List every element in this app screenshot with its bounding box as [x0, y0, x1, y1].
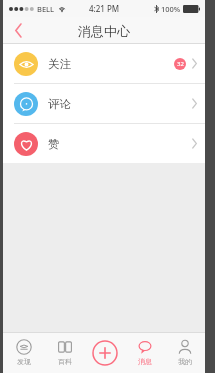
staticText: BELL [37, 4, 55, 14]
staticText: 消息中心 [78, 23, 130, 39]
button[interactable]: 消息 [125, 332, 165, 373]
staticText: 评论 [48, 97, 71, 111]
button[interactable]: 我的 [165, 332, 205, 373]
button[interactable]: Add [88, 336, 122, 370]
staticText: 关注 [48, 57, 71, 71]
staticText: 赞 [48, 137, 60, 151]
button[interactable]: 关注 [3, 44, 205, 83]
button[interactable]: Back [3, 17, 33, 44]
button[interactable]: 发现 [3, 332, 44, 373]
button[interactable]: 百科 [44, 332, 85, 373]
button[interactable]: 评论 [3, 84, 205, 123]
staticText: 百科 [58, 357, 72, 366]
staticText: 32 [177, 60, 184, 68]
staticText: 100% [161, 4, 181, 14]
button[interactable]: 赞 [3, 124, 205, 163]
staticText: 我的 [178, 357, 192, 366]
staticText: 消息 [138, 357, 152, 366]
staticText: 4:21 PM [89, 3, 120, 14]
staticText: 发现 [17, 357, 31, 366]
